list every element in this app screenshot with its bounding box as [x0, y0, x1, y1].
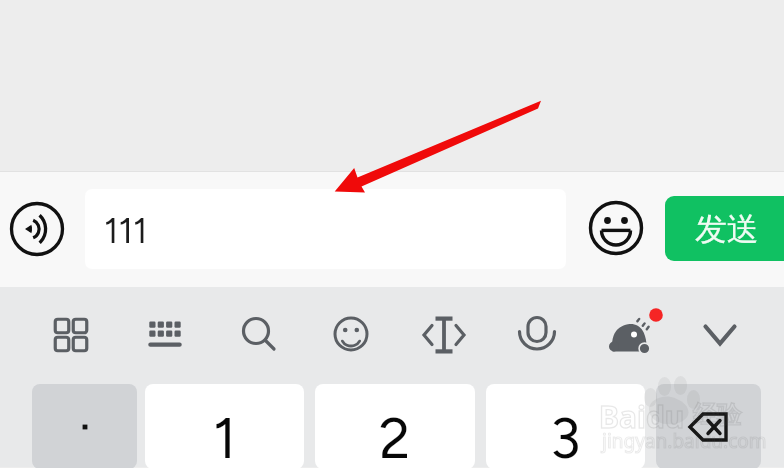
button[interactable]: Backspace	[656, 384, 761, 468]
staticText: 111	[104, 210, 148, 252]
button[interactable]: Emoji	[587, 199, 645, 257]
staticText: 1	[213, 405, 237, 468]
staticText: 发送	[695, 209, 759, 249]
button[interactable]: Dot	[32, 384, 137, 468]
staticText: 经验	[693, 400, 741, 430]
button[interactable]: Stickers	[323, 306, 379, 362]
button[interactable]: Apps	[43, 307, 99, 363]
staticText: 3	[550, 405, 581, 468]
button[interactable]: 2	[315, 384, 475, 468]
button[interactable]: 111	[85, 189, 566, 269]
button[interactable]: 1	[145, 384, 304, 468]
button[interactable]: Collapse keyboard	[692, 307, 748, 363]
button[interactable]: AI assistant	[604, 307, 660, 363]
button[interactable]: 发送	[665, 196, 784, 261]
button[interactable]: 3	[486, 384, 645, 468]
staticText: 2	[379, 405, 411, 468]
staticText: Baidu	[599, 396, 685, 437]
button[interactable]: Voice input	[5, 197, 69, 261]
button[interactable]: Voice to text	[509, 306, 565, 362]
button[interactable]: Keyboard	[137, 307, 193, 363]
staticText: jingyan.baidu.com	[602, 428, 767, 454]
button[interactable]: Search	[230, 305, 286, 361]
button[interactable]: Edit text	[416, 307, 472, 363]
